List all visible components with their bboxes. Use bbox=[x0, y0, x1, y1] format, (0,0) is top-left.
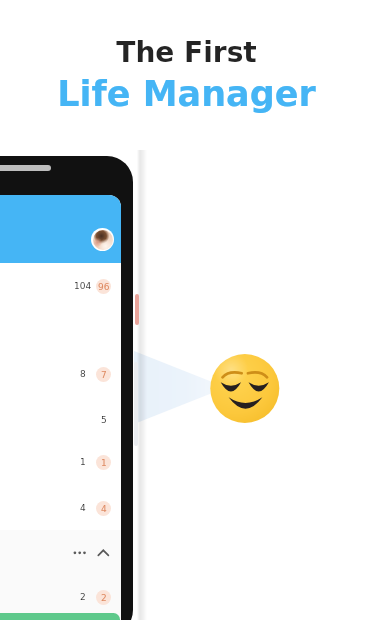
staticText: 7 bbox=[101, 370, 107, 380]
staticText: 2 bbox=[101, 593, 107, 603]
staticText: 8 bbox=[80, 369, 86, 379]
staticText: 5 bbox=[101, 415, 107, 425]
button[interactable]: 2 bbox=[75, 588, 114, 606]
button[interactable]: 8 bbox=[75, 365, 114, 383]
button[interactable]: Profile bbox=[91, 228, 114, 251]
staticText: 1 bbox=[101, 458, 107, 468]
staticText: 96 bbox=[98, 282, 110, 292]
staticText: 4 bbox=[101, 504, 107, 514]
staticText: 4 bbox=[80, 503, 86, 513]
button[interactable]: 4 bbox=[75, 499, 114, 517]
button[interactable]: More options bbox=[0, 530, 121, 620]
staticText: 1 bbox=[80, 457, 86, 467]
staticText: Life Manager bbox=[57, 74, 316, 115]
button[interactable]: 5 bbox=[75, 410, 114, 428]
staticText: 2 bbox=[80, 592, 86, 602]
button[interactable]: Add task bbox=[0, 613, 120, 620]
button[interactable]: 1 bbox=[75, 453, 114, 471]
button[interactable]: 104 bbox=[75, 277, 114, 295]
staticText: The First bbox=[116, 36, 257, 69]
staticText: 104 bbox=[74, 281, 92, 291]
